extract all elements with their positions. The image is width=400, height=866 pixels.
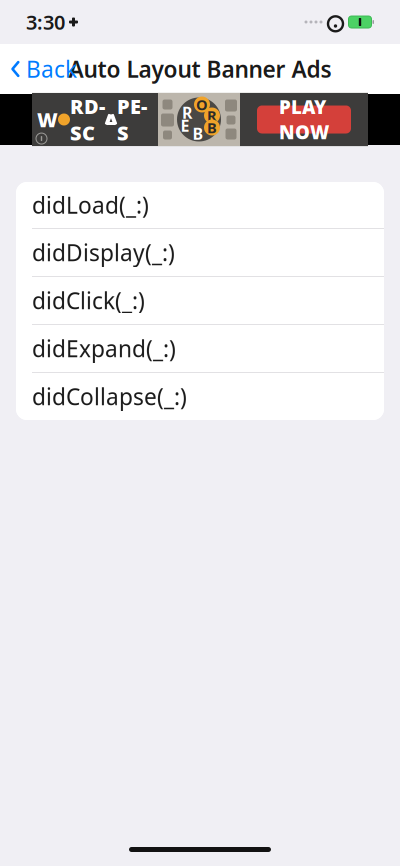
staticText: didLoad(_:) [32,190,149,220]
staticText: Back [26,54,77,84]
staticText: W [37,106,58,133]
staticText: PES [117,93,147,146]
staticText: R [182,102,192,123]
button[interactable]: didLoad(_:) [16,182,384,229]
staticText: Auto Layout Banner Ads [68,54,331,84]
button[interactable]: Back [0,48,77,90]
button[interactable]: didClick(_:) [16,277,384,325]
staticText: O [196,95,208,114]
staticText: B [207,118,217,137]
staticText: didExpand(_:) [32,333,176,363]
staticText: E [180,115,189,136]
button[interactable]: Wordscapes advertisement, Play Now [0,93,400,146]
staticText: R [207,106,217,125]
staticText: B [192,123,203,144]
staticText: 3:30 [26,9,65,35]
staticText: didCollapse(_:) [32,381,187,411]
staticText: RDSC [70,93,105,146]
button[interactable]: didExpand(_:) [16,325,384,373]
staticText: didDisplay(_:) [32,237,175,267]
staticText: didClick(_:) [32,285,145,315]
button[interactable]: didDisplay(_:) [16,229,384,277]
staticText: PLAY NOW [279,95,329,144]
button[interactable]: didCollapse(_:) [16,373,384,420]
